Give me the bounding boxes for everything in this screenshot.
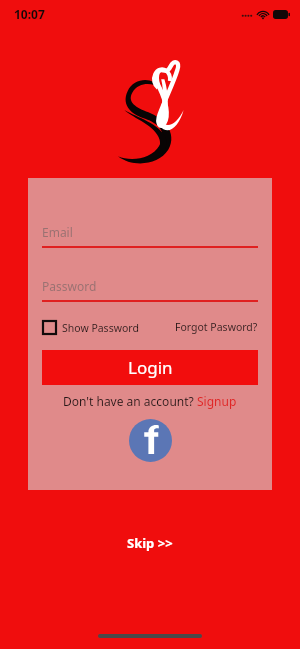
staticText: Forgot Pasword? bbox=[175, 320, 258, 334]
staticText: 10:07 bbox=[14, 6, 45, 22]
staticText: Skip >> bbox=[127, 534, 173, 552]
staticText: Email bbox=[42, 224, 73, 240]
button[interactable]: Forgot Pasword? bbox=[175, 320, 258, 334]
staticText: Signup bbox=[197, 393, 237, 409]
staticText: Password bbox=[42, 278, 97, 294]
staticText: Don't have an account? bbox=[63, 393, 197, 409]
button[interactable]: Sign in with Facebook bbox=[129, 419, 172, 462]
button[interactable]: Email bbox=[42, 218, 258, 246]
button[interactable]: Signup bbox=[197, 393, 237, 409]
button[interactable]: Password bbox=[42, 272, 258, 300]
staticText: Show Password bbox=[62, 321, 139, 335]
button[interactable]: Login bbox=[42, 350, 258, 385]
button[interactable]: Skip >> bbox=[115, 528, 185, 558]
staticText: Login bbox=[128, 356, 173, 379]
button[interactable]: Show Password bbox=[42, 320, 143, 335]
